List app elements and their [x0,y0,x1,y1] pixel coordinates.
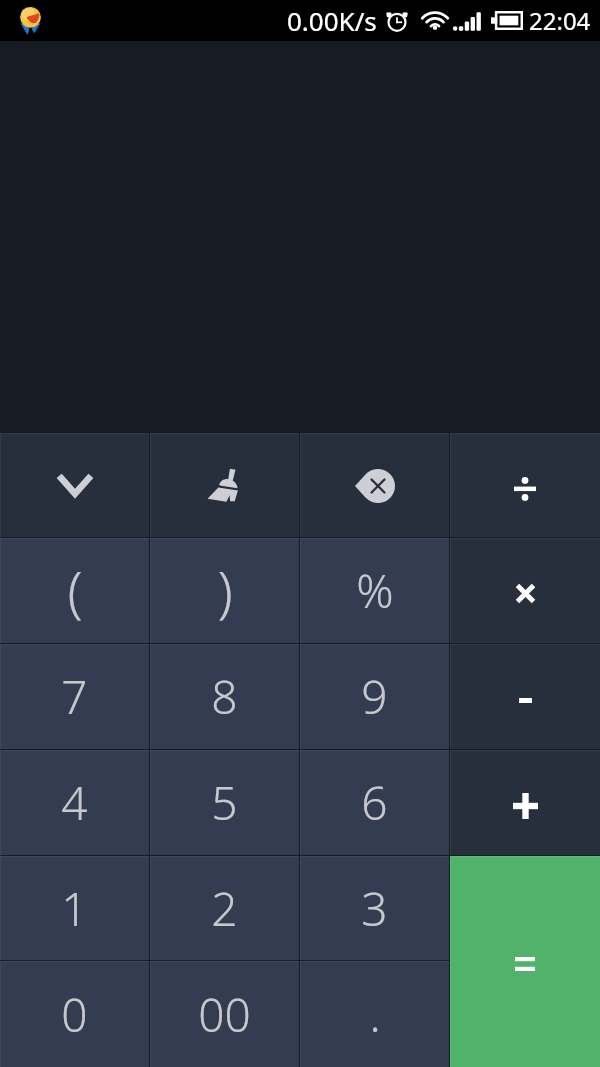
button[interactable]: 7 [0,644,149,749]
button[interactable]: 3 [300,856,449,960]
staticText: 9 [361,665,388,728]
button[interactable]: Collapse keypad [0,433,149,537]
staticText: ) [217,553,233,628]
button[interactable]: 0 [0,961,149,1067]
button[interactable]: % [300,538,449,643]
staticText: 2 [211,877,238,940]
button[interactable]: ) [150,538,299,643]
button[interactable]: Plus [450,750,600,855]
staticText: 00 [198,983,251,1046]
button[interactable]: Minus [450,644,600,749]
button[interactable]: Equals [450,856,600,1067]
button[interactable]: 6 [300,750,449,855]
button[interactable]: . [300,961,449,1067]
staticText: ( [67,553,83,628]
staticText: 22:04 [529,4,591,37]
button[interactable]: 9 [300,644,449,749]
staticText: 0 [61,983,88,1046]
button[interactable]: Clear all [150,433,299,537]
staticText: 8 [211,665,238,728]
button[interactable]: 5 [150,750,299,855]
button[interactable]: Divide [450,433,600,537]
button[interactable]: Backspace [300,433,449,537]
button[interactable]: 1 [0,856,149,960]
button[interactable]: 00 [150,961,299,1067]
staticText: 4 [61,771,88,834]
staticText: 5 [211,771,238,834]
button[interactable]: Multiply [450,538,600,643]
staticText: 7 [61,665,88,728]
button[interactable]: 8 [150,644,299,749]
staticText: 3 [361,877,388,940]
button[interactable]: 2 [150,856,299,960]
staticText: 1 [61,877,88,940]
staticText: 0.00K/s [287,3,377,38]
staticText: 6 [361,771,388,834]
button[interactable]: 4 [0,750,149,855]
button[interactable]: ( [0,538,149,643]
staticText: . [369,983,381,1046]
staticText: % [356,559,394,622]
